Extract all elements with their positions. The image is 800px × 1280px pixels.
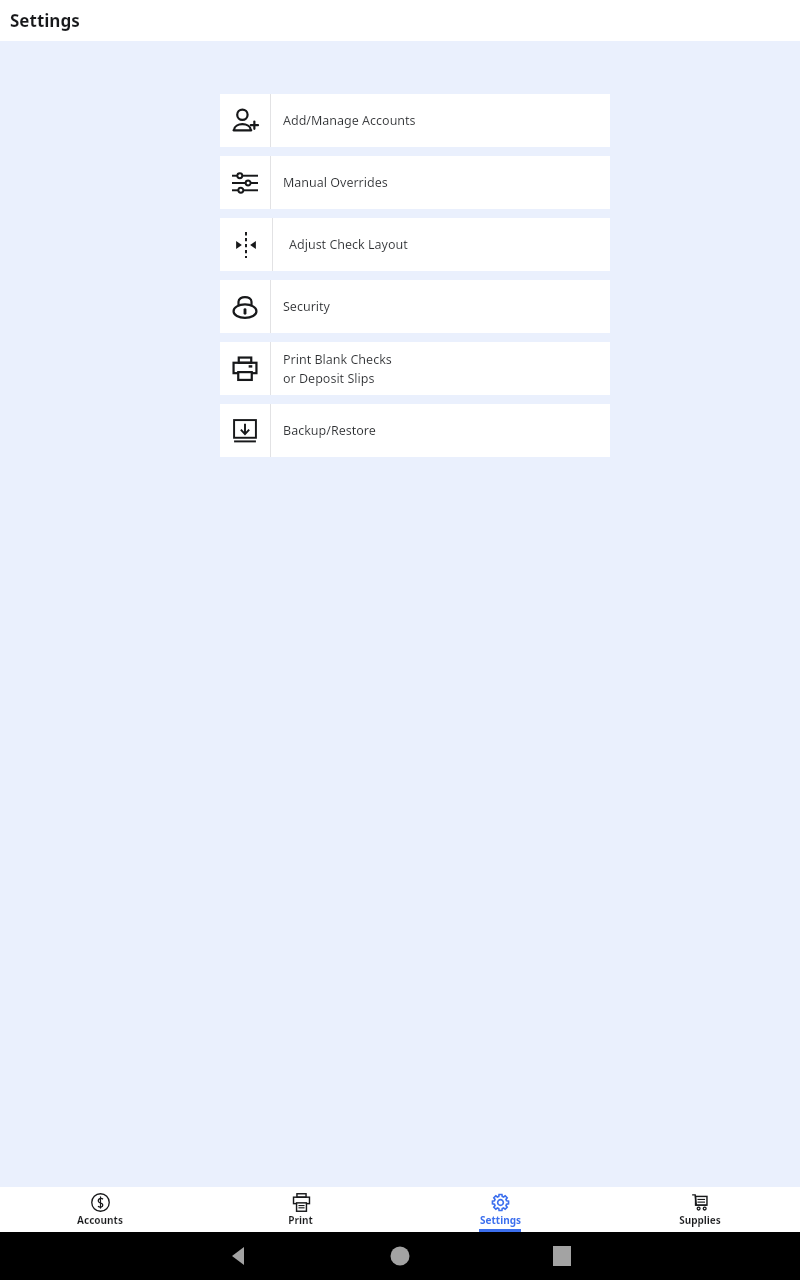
other: Print bbox=[292, 1193, 311, 1212]
staticText: Print Blank Checks bbox=[283, 351, 392, 368]
staticText: Supplies bbox=[679, 1213, 721, 1227]
staticText: or Deposit Slips bbox=[283, 370, 375, 387]
other: Backup or restore bbox=[232, 418, 258, 444]
other: Settings bbox=[491, 1193, 510, 1212]
button[interactable]: Add or manage accounts bbox=[220, 94, 610, 147]
button[interactable]: Print bbox=[200, 1187, 400, 1232]
button[interactable]: Settings bbox=[400, 1187, 600, 1232]
staticText: Manual Overrides bbox=[283, 174, 388, 191]
button[interactable]: Backup or restore bbox=[220, 404, 610, 457]
staticText: Security bbox=[283, 298, 330, 315]
other: Manual overrides bbox=[232, 170, 258, 196]
button[interactable]: Adjust check layout bbox=[220, 218, 610, 271]
staticText: Add/Manage Accounts bbox=[283, 112, 416, 129]
other: Supplies bbox=[691, 1193, 710, 1212]
staticText: Print bbox=[288, 1213, 313, 1227]
staticText: Settings bbox=[480, 1213, 521, 1227]
staticText: Settings bbox=[10, 9, 80, 32]
button[interactable]: Supplies bbox=[600, 1187, 800, 1232]
button[interactable]: Accounts bbox=[0, 1187, 200, 1232]
other: Adjust check layout bbox=[233, 232, 259, 258]
other: Security bbox=[232, 294, 258, 320]
staticText: Accounts bbox=[77, 1213, 123, 1227]
other: Print blank checks or deposit slips bbox=[232, 356, 258, 382]
button[interactable]: Print blank checks or deposit slips bbox=[220, 342, 610, 395]
button[interactable]: Manual overrides bbox=[220, 156, 610, 209]
other: Accounts bbox=[91, 1193, 110, 1212]
other: Add or manage accounts bbox=[232, 108, 258, 134]
button[interactable]: Security bbox=[220, 280, 610, 333]
staticText: Backup/Restore bbox=[283, 422, 376, 439]
staticText: Adjust Check Layout bbox=[289, 236, 408, 253]
